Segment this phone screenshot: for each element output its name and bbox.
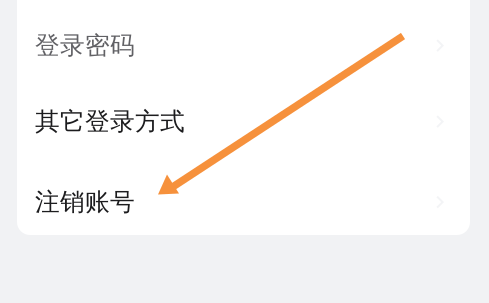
button[interactable]: 登录密码: [17, 7, 470, 83]
staticText: 注销账号: [35, 186, 135, 218]
button[interactable]: 其它登录方式: [17, 83, 470, 159]
button[interactable]: 注销账号: [17, 164, 470, 240]
staticText: 其它登录方式: [35, 106, 185, 137]
staticText: 登录密码: [35, 30, 135, 61]
